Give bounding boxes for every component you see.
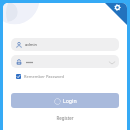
- staticText: admin: [25, 42, 37, 47]
- staticText: Login: [63, 97, 77, 104]
- button[interactable]: Settings: [105, 3, 127, 25]
- button[interactable]: Register: [54, 113, 76, 123]
- staticText: Remember Password: [24, 74, 64, 79]
- button[interactable]: [11, 55, 119, 68]
- button[interactable]: Remember Password: [16, 74, 64, 79]
- button[interactable]: admin: [11, 38, 119, 51]
- button[interactable]: Login: [11, 93, 119, 108]
